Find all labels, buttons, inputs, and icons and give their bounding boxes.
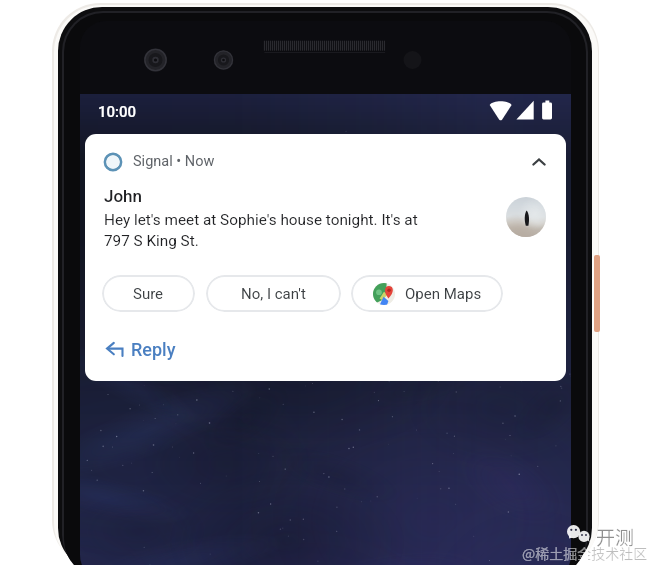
staticText: 10:00 bbox=[98, 103, 137, 121]
button[interactable]: Reply bbox=[96, 331, 176, 367]
staticText: No, I can't bbox=[241, 285, 306, 303]
staticText: Open Maps bbox=[405, 285, 482, 303]
staticText: @稀土掘金技术社区 bbox=[522, 543, 648, 563]
button[interactable]: Signal • Now bbox=[97, 146, 215, 177]
staticText: Reply bbox=[131, 339, 176, 360]
button[interactable]: No, I can't bbox=[206, 275, 341, 312]
staticText: John bbox=[104, 186, 143, 206]
button[interactable]: Sure bbox=[102, 275, 195, 312]
staticText: Signal • Now bbox=[133, 153, 215, 170]
button[interactable]: Collapse notification bbox=[521, 144, 557, 180]
staticText: 开测 bbox=[596, 523, 635, 551]
staticText: @稀土掘金技术社区 bbox=[522, 543, 648, 563]
staticText: 开测 bbox=[596, 523, 635, 551]
staticText: Hey let's meet at Sophie's house tonight… bbox=[104, 211, 418, 250]
staticText: Sure bbox=[133, 285, 164, 303]
button[interactable]: Open Maps bbox=[351, 275, 503, 312]
